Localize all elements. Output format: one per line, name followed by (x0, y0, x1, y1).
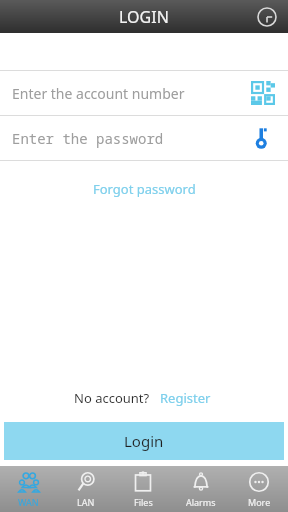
button[interactable]: Login (4, 422, 284, 460)
button[interactable]: LAN (57, 466, 114, 512)
staticText: Enter the account number (12, 84, 246, 103)
staticText: Login (124, 431, 164, 451)
staticText: Register (160, 389, 211, 407)
button[interactable]: Show password (246, 121, 280, 155)
staticText: Enter the password (12, 129, 246, 148)
staticText: Forgot password (93, 180, 196, 198)
button[interactable]: Forgot password (83, 176, 206, 202)
button[interactable]: Alarms (172, 466, 230, 512)
staticText: No account? (74, 389, 150, 407)
button[interactable]: WAN (0, 466, 57, 512)
staticText: WAN (18, 496, 39, 508)
button[interactable]: Scan QR code (246, 76, 280, 110)
staticText: LOGIN (119, 6, 169, 28)
button[interactable]: Register (157, 386, 214, 410)
staticText: Alarms (186, 496, 216, 508)
button[interactable]: More (230, 466, 288, 512)
button[interactable]: Enter the password (0, 116, 288, 160)
staticText: Files (134, 496, 153, 508)
staticText: More (248, 496, 271, 508)
button[interactable]: Enter the account number (0, 71, 288, 115)
button[interactable]: Files (114, 466, 172, 512)
staticText: LAN (77, 496, 95, 508)
button[interactable]: Clock (254, 4, 280, 30)
